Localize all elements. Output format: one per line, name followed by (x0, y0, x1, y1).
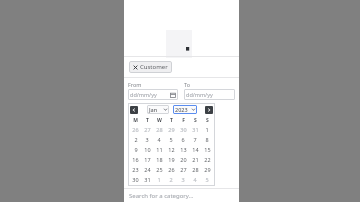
staticText: Customer (140, 63, 168, 71)
staticText: 1 (157, 176, 161, 183)
staticText: T (170, 117, 173, 124)
button[interactable]: 17 (141, 154, 153, 164)
staticText: 31 (192, 126, 199, 133)
button[interactable]: 10 (141, 144, 153, 154)
staticText: 24 (144, 166, 151, 173)
button[interactable]: 1 (153, 174, 165, 184)
staticText: 30 (132, 176, 139, 183)
button[interactable]: 6 (177, 134, 189, 144)
staticText: 9 (134, 146, 138, 153)
button[interactable]: 7 (189, 134, 201, 144)
staticText: T (146, 117, 149, 124)
button[interactable]: 2023 (173, 105, 197, 114)
staticText: 4 (157, 136, 161, 143)
button[interactable]: 25 (153, 164, 165, 174)
button[interactable]: 27 (177, 164, 189, 174)
staticText: 14 (192, 146, 199, 153)
staticText: 30 (180, 126, 187, 133)
staticText: 15 (204, 146, 211, 153)
button[interactable]: 30 (130, 174, 141, 184)
button[interactable]: 16 (130, 154, 141, 164)
button[interactable]: Previous month (130, 106, 138, 114)
staticText: 26 (168, 166, 175, 173)
staticText: 6 (181, 136, 185, 143)
button[interactable]: 11 (153, 144, 165, 154)
staticText: 3 (181, 176, 185, 183)
button[interactable]: 27 (141, 124, 153, 134)
staticText: To (184, 81, 191, 88)
staticText: 5 (169, 136, 173, 143)
button[interactable]: 8 (201, 134, 213, 144)
staticText: 20 (180, 156, 187, 163)
button[interactable]: 4 (153, 134, 165, 144)
staticText: F (182, 117, 185, 124)
button[interactable]: 24 (141, 164, 153, 174)
staticText: S (206, 117, 209, 124)
button[interactable]: 2 (130, 134, 141, 144)
button[interactable]: 9 (130, 144, 141, 154)
button[interactable]: 5 (201, 174, 213, 184)
button[interactable]: 30 (177, 124, 189, 134)
button[interactable]: 14 (189, 144, 201, 154)
staticText: 22 (204, 156, 211, 163)
button[interactable]: 15 (201, 144, 213, 154)
staticText: 31 (144, 176, 151, 183)
staticText: From (128, 81, 142, 88)
button[interactable]: 29 (201, 164, 213, 174)
button[interactable]: 3 (177, 174, 189, 184)
staticText: 27 (144, 126, 151, 133)
staticText: 29 (168, 126, 175, 133)
button[interactable]: 18 (153, 154, 165, 164)
staticText: 2 (169, 176, 173, 183)
button[interactable]: 20 (177, 154, 189, 164)
button[interactable]: 31 (189, 124, 201, 134)
staticText: 19 (168, 156, 175, 163)
button[interactable]: 3 (141, 134, 153, 144)
staticText: 23 (132, 166, 139, 173)
button[interactable]: 1 (201, 124, 213, 134)
button[interactable]: Customer (129, 61, 172, 73)
staticText: 13 (180, 146, 187, 153)
staticText: Jan (149, 106, 158, 113)
staticText: dd/mm/yy (186, 91, 233, 98)
button[interactable]: 13 (177, 144, 189, 154)
button[interactable]: 26 (130, 124, 141, 134)
button[interactable]: dd/mm/yy (184, 89, 235, 100)
staticText: 1 (205, 126, 209, 133)
button[interactable]: 4 (189, 174, 201, 184)
button[interactable]: 23 (130, 164, 141, 174)
staticText: Search for a category... (129, 192, 194, 200)
button[interactable]: 28 (153, 124, 165, 134)
button[interactable]: 28 (189, 164, 201, 174)
staticText: 18 (156, 156, 163, 163)
button[interactable]: 26 (165, 164, 177, 174)
staticText: 2023 (175, 106, 188, 113)
button[interactable]: Next month (205, 106, 213, 114)
staticText: M (133, 117, 138, 124)
staticText: 16 (132, 156, 139, 163)
staticText: 11 (156, 146, 163, 153)
staticText: 8 (205, 136, 209, 143)
button[interactable]: 12 (165, 144, 177, 154)
staticText: W (157, 117, 162, 124)
staticText: 2 (134, 136, 138, 143)
staticText: 7 (193, 136, 197, 143)
button[interactable]: 31 (141, 174, 153, 184)
staticText: 5 (205, 176, 209, 183)
staticText: 25 (156, 166, 163, 173)
button[interactable]: Search for a category... (124, 189, 239, 202)
staticText: 28 (192, 166, 199, 173)
staticText: 12 (168, 146, 175, 153)
button[interactable]: 22 (201, 154, 213, 164)
button[interactable]: dd/mm/yy (128, 89, 178, 100)
button[interactable]: 19 (165, 154, 177, 164)
button[interactable]: 21 (189, 154, 201, 164)
staticText: 4 (193, 176, 197, 183)
staticText: 17 (144, 156, 151, 163)
button[interactable]: 29 (165, 124, 177, 134)
staticText: 3 (145, 136, 149, 143)
button[interactable]: 5 (165, 134, 177, 144)
button[interactable]: Jan (147, 105, 169, 114)
button[interactable]: 2 (165, 174, 177, 184)
staticText: 29 (204, 166, 211, 173)
